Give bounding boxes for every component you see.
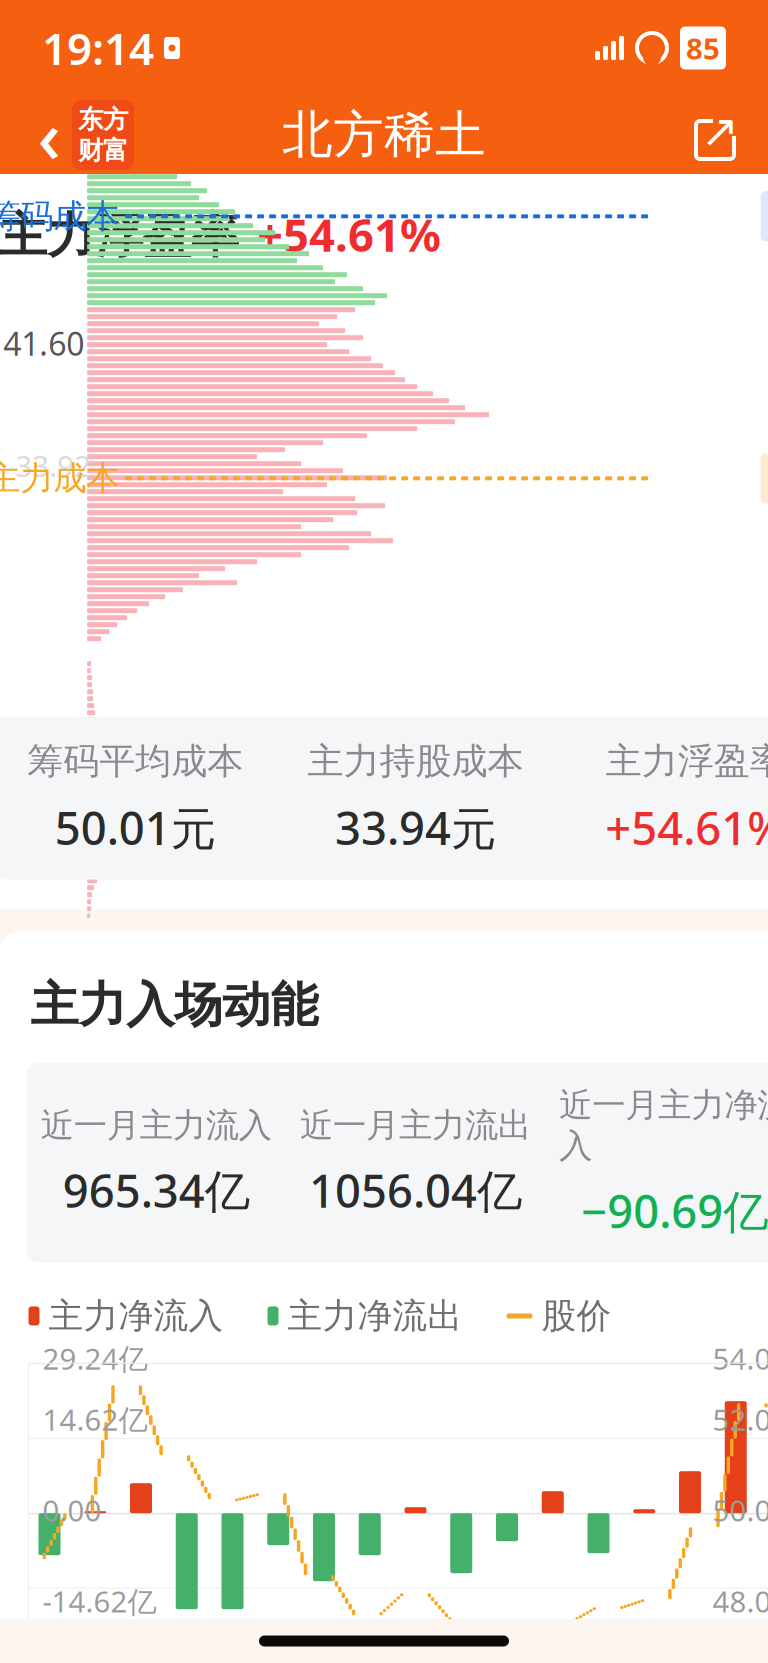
staticText: 筹码成本 xyxy=(0,196,119,237)
staticText: 主力浮盈率 xyxy=(606,739,768,783)
staticText: 1056.04亿 xyxy=(309,1160,522,1220)
staticText: 主力净流入 xyxy=(48,1295,223,1337)
staticText: 主力入场动能 xyxy=(30,976,318,1035)
staticText: 东方 xyxy=(78,104,128,135)
staticText: +54.61% xyxy=(605,797,768,858)
button[interactable]: 返回 xyxy=(26,103,72,167)
staticText: 主力净流出 xyxy=(287,1295,462,1337)
staticText: 股价 xyxy=(541,1295,611,1337)
staticText: 54.00 xyxy=(712,1339,768,1378)
staticText: ↗ xyxy=(701,105,739,157)
staticText: 50.00 xyxy=(712,1491,768,1530)
staticText: 33.94元 xyxy=(335,797,496,858)
staticText: 北方稀土 xyxy=(282,104,486,166)
staticText: 48.00 xyxy=(712,1582,768,1621)
staticText: -14.62亿 xyxy=(42,1582,156,1621)
staticText: 主力成本 xyxy=(0,458,119,499)
staticText: 33.92 xyxy=(15,446,91,485)
button[interactable]: 东方财富 xyxy=(72,100,134,170)
staticText: 近一月主力流出 xyxy=(300,1105,531,1146)
staticText: 50.01元 xyxy=(55,797,216,858)
staticText: 57.69 xyxy=(3,89,84,132)
staticText: 近一月主力净流入 xyxy=(559,1085,768,1166)
staticText: 19:14 xyxy=(42,19,154,77)
staticText: 财富 xyxy=(78,135,128,166)
staticText: 0.00 xyxy=(42,1491,101,1530)
staticText: 965.34亿 xyxy=(63,1160,250,1220)
staticText: 29.24亿 xyxy=(42,1339,147,1378)
staticText: 52.00 xyxy=(712,1400,768,1439)
staticText: 筹码平均成本 xyxy=(27,739,243,783)
staticText: +54.61% xyxy=(257,204,441,264)
staticText: 主力浮盈率 xyxy=(0,206,239,265)
staticText: 近一月主力流入 xyxy=(41,1105,272,1146)
staticText: ‹ xyxy=(37,87,60,183)
staticText: 14.62亿 xyxy=(42,1400,147,1439)
staticText: 85 xyxy=(686,28,720,67)
staticText: 主力持股成本 xyxy=(307,739,523,783)
button[interactable]: 分享 xyxy=(688,107,742,163)
staticText: 41.60 xyxy=(3,322,84,365)
staticText: −90.69亿 xyxy=(581,1180,768,1241)
